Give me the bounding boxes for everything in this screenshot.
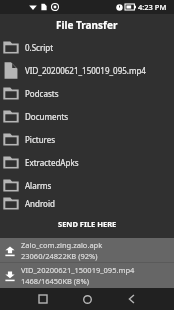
- button[interactable]: Pictures: [0, 128, 174, 151]
- staticText: 1468/16450KB (8%): [21, 276, 89, 286]
- button[interactable]: Upload: [0, 238, 174, 263]
- button[interactable]: Download: [0, 263, 174, 288]
- button[interactable]: Home: [67, 288, 107, 310]
- button[interactable]: Android: [0, 197, 174, 210]
- staticText: VID_20200621_150019_095.mp4: [25, 65, 146, 76]
- button[interactable]: Podcasts: [0, 82, 174, 105]
- staticText: Documents: [25, 111, 69, 122]
- staticText: 23060/24822KB (92%): [21, 251, 98, 261]
- staticText: File Transfer: [56, 18, 118, 32]
- other: Download: [3, 269, 17, 283]
- button[interactable]: SEND FILE HERE: [0, 210, 174, 238]
- other: Upload: [3, 244, 17, 258]
- button[interactable]: ExtractedApks: [0, 151, 174, 174]
- staticText: SEND FILE HERE: [58, 219, 117, 229]
- button[interactable]: VID_20200621_150019_095.mp4: [0, 59, 174, 82]
- staticText: Android: [25, 198, 55, 209]
- staticText: Zalo_com.zing.zalo.apk: [21, 240, 103, 250]
- button[interactable]: Documents: [0, 105, 174, 128]
- staticText: ExtractedApks: [25, 157, 79, 168]
- staticText: VID_20200621_150019_095.mp4: [21, 265, 135, 275]
- staticText: Pictures: [25, 134, 56, 145]
- button[interactable]: Recents: [23, 288, 63, 310]
- button[interactable]: Alarms: [0, 174, 174, 197]
- staticText: Alarms: [25, 180, 52, 191]
- staticText: 0.Script: [25, 42, 54, 53]
- staticText: 4:23 PM: [138, 2, 167, 12]
- staticText: Podcasts: [25, 88, 59, 99]
- button[interactable]: Back: [111, 288, 151, 310]
- button[interactable]: 0.Script: [0, 36, 174, 59]
